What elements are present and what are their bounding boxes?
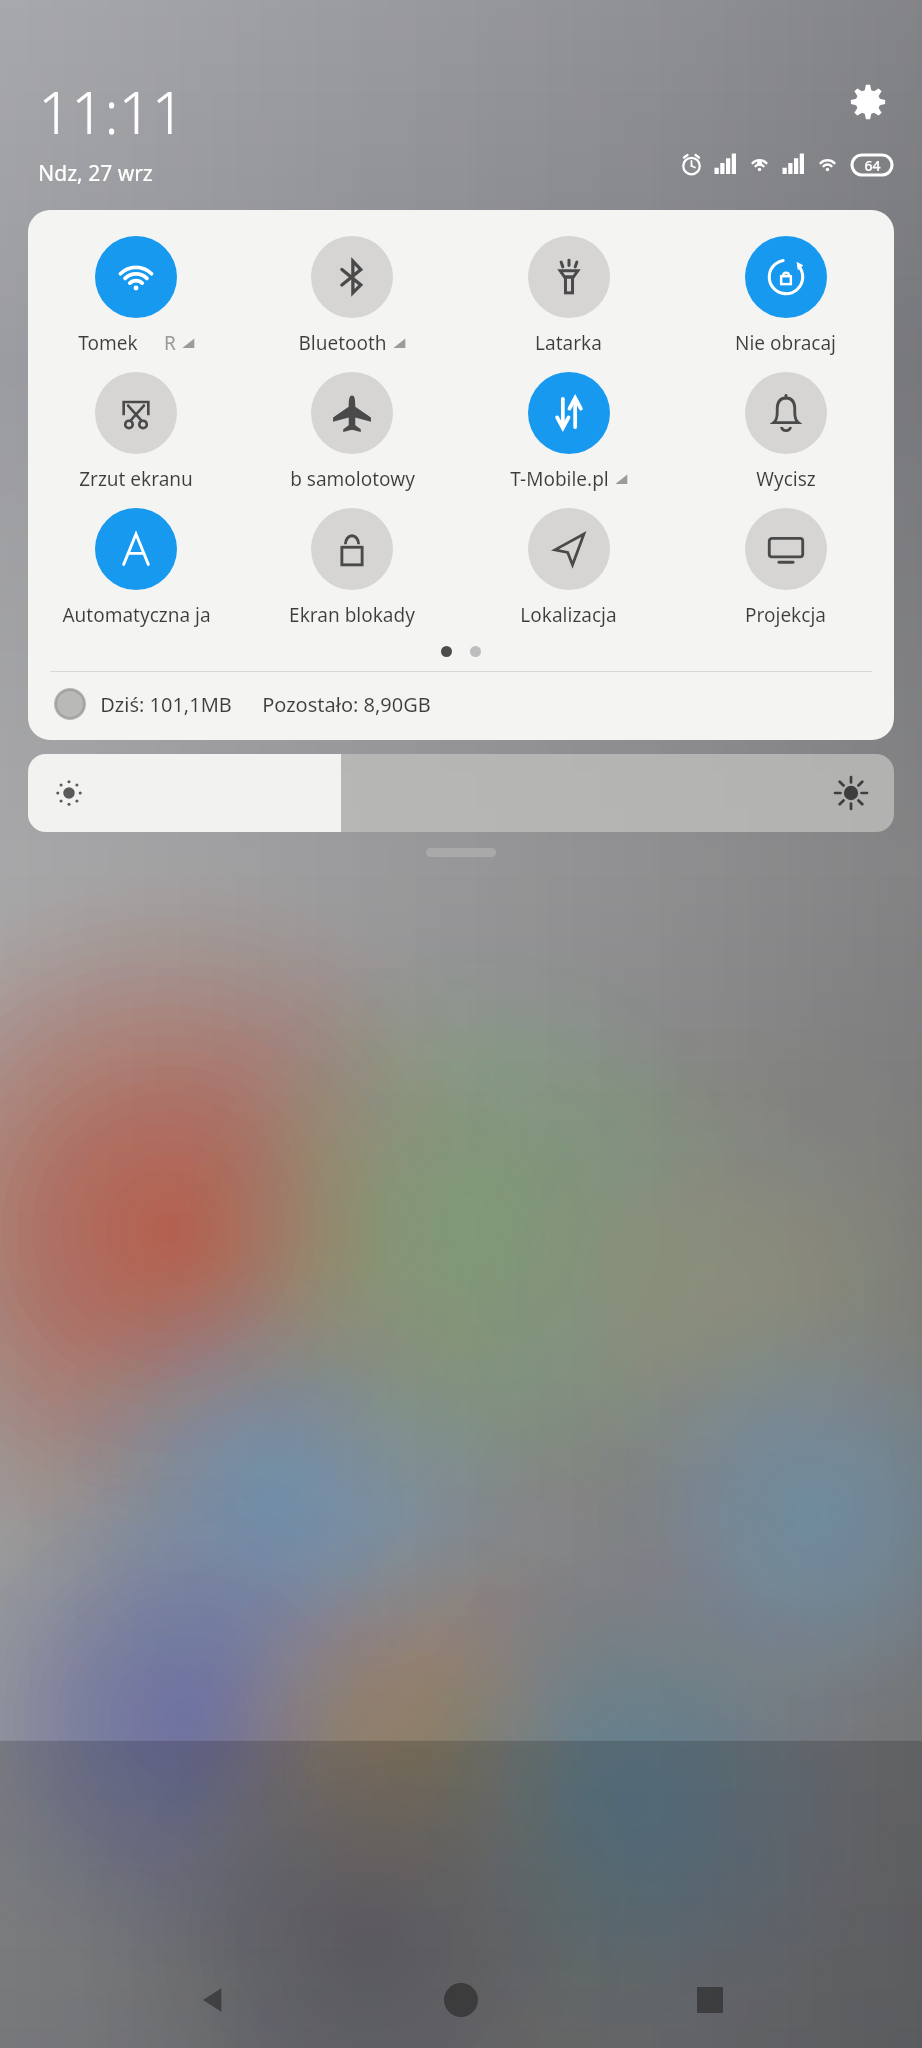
button[interactable]: Back [177, 1964, 249, 2036]
staticText: Nie obracaj [735, 330, 836, 356]
staticText: Tomek [78, 330, 138, 356]
button[interactable]: T-Mobile.pl [460, 364, 677, 500]
staticText: Ekran blokady [289, 602, 415, 628]
staticText: Zrzut ekranu [79, 466, 193, 492]
staticText: b samolotowy [290, 466, 415, 492]
staticText: Lokalizacja [520, 602, 617, 628]
button[interactable]: Zrzut ekranu [28, 364, 244, 500]
staticText: R [164, 330, 176, 356]
button[interactable]: Ekran blokady [244, 500, 460, 636]
staticText: T-Mobile.pl [510, 466, 609, 492]
button[interactable]: Recents [674, 1964, 746, 2036]
staticText: Bluetooth [298, 330, 387, 356]
button[interactable]: Automatyczna ja [28, 500, 244, 636]
staticText: 11:11 [38, 72, 185, 151]
button[interactable]: Wycisz [677, 364, 894, 500]
staticText: Ndz, 27 wrz [38, 159, 153, 188]
button[interactable]: b samolotowy [244, 364, 460, 500]
button[interactable]: Home [425, 1964, 497, 2036]
button[interactable]: Brightness [28, 754, 894, 832]
staticText: Automatyczna ja [62, 602, 211, 628]
staticText: Wycisz [756, 466, 816, 492]
staticText: Dziś: 101,1MB [100, 691, 232, 718]
button[interactable]: Tomek [28, 228, 244, 364]
button[interactable]: Latarka [460, 228, 677, 364]
staticText: 64 [864, 156, 881, 175]
staticText: Projekcja [745, 602, 826, 628]
button[interactable]: Dziś: 101,1MB [28, 686, 894, 726]
staticText: Pozostało: 8,90GB [262, 691, 431, 718]
button[interactable]: Bluetooth [244, 228, 460, 364]
button[interactable]: Lokalizacja [460, 500, 677, 636]
staticText: Latarka [535, 330, 602, 356]
button[interactable]: Settings [844, 78, 892, 126]
button[interactable]: Projekcja [677, 500, 894, 636]
button[interactable]: Nie obracaj [677, 228, 894, 364]
